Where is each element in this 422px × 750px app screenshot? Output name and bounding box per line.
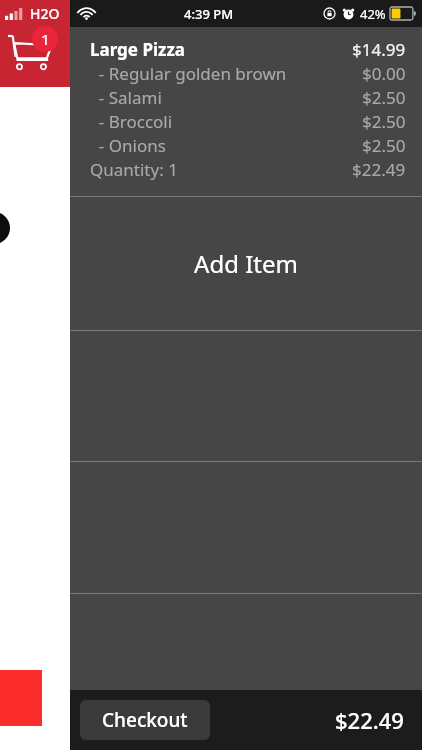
staticText: Large Pizza <box>90 38 186 61</box>
button[interactable]: Cart <box>0 0 70 87</box>
staticText: 42% <box>360 5 386 23</box>
button[interactable]: Large Pizza <box>70 27 422 196</box>
staticText: $14.99 <box>352 38 406 61</box>
staticText: $2.50 <box>362 86 406 109</box>
staticText: $0.00 <box>362 62 406 85</box>
button[interactable]: Checkout <box>80 700 210 740</box>
staticText: $22.49 <box>352 158 406 181</box>
staticText: Checkout <box>102 707 188 733</box>
staticText: $2.50 <box>362 110 406 133</box>
staticText: $22.49 <box>335 705 404 735</box>
staticText: Add Item <box>194 247 298 280</box>
staticText: - Salami <box>90 86 162 109</box>
staticText: - Broccoli <box>90 110 173 133</box>
staticText: - Regular golden brown <box>90 62 287 85</box>
staticText: H2O <box>30 4 60 23</box>
staticText: 1 <box>41 29 50 49</box>
staticText: 4:39 PM <box>184 5 234 23</box>
staticText: - Onions <box>90 134 166 157</box>
staticText: Quantity: 1 <box>90 158 178 181</box>
button[interactable]: Add Item <box>70 197 422 330</box>
staticText: $2.50 <box>362 134 406 157</box>
